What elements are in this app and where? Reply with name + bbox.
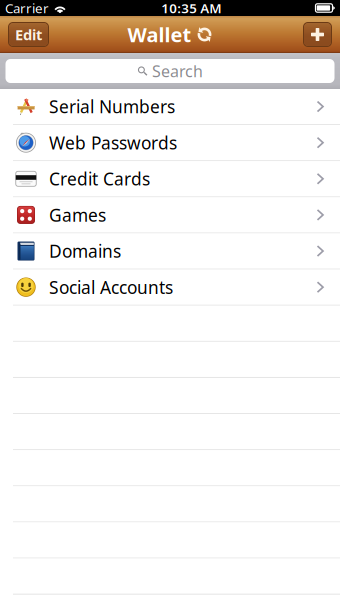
button[interactable]: Web Passwords	[0, 125, 340, 161]
staticText: Domains	[49, 239, 121, 262]
button[interactable]: Domains	[0, 233, 340, 270]
staticText: Carrier	[5, 0, 49, 17]
staticText: Edit	[15, 25, 42, 44]
staticText: Social Accounts	[49, 276, 173, 299]
staticText: 10:35 AM	[161, 0, 221, 17]
staticText: Credit Cards	[49, 167, 150, 190]
button[interactable]: Search	[0, 59, 340, 83]
button[interactable]: Add	[303, 22, 332, 47]
button[interactable]: Credit Cards	[0, 161, 340, 197]
button[interactable]: Games	[0, 197, 340, 233]
staticText: Serial Numbers	[49, 95, 175, 118]
staticText: Web Passwords	[49, 131, 177, 154]
staticText: Search	[152, 60, 203, 82]
staticText: Games	[49, 203, 106, 226]
staticText: Wallet	[127, 21, 191, 48]
button[interactable]: Social Accounts	[0, 270, 340, 306]
button[interactable]: Serial Numbers	[0, 89, 340, 125]
button[interactable]: Edit	[8, 22, 49, 47]
